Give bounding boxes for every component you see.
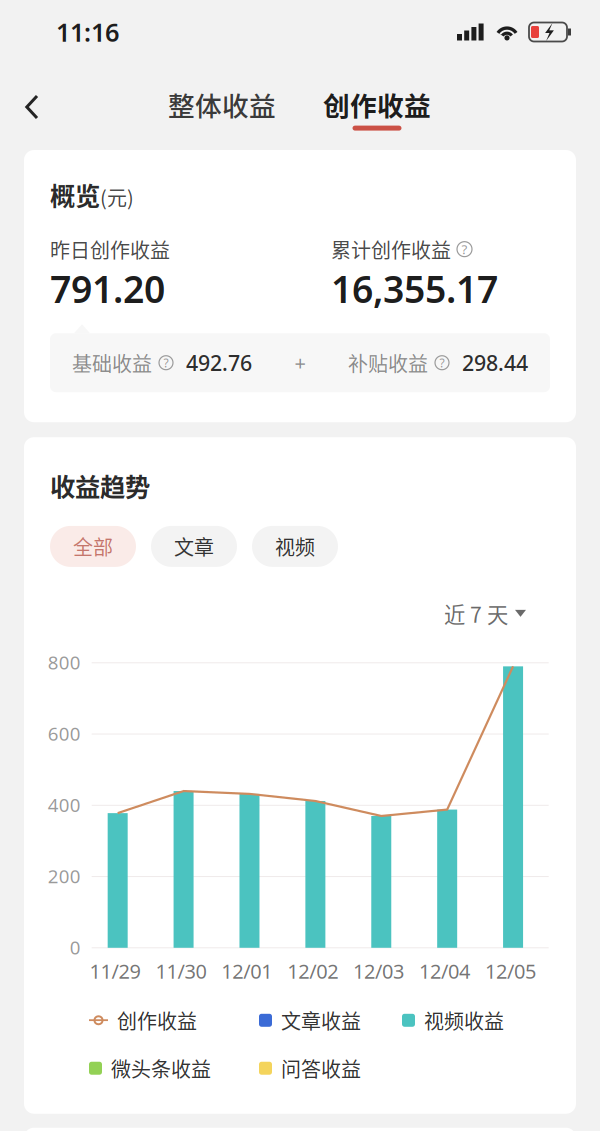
staticText: 400 bbox=[48, 792, 81, 817]
staticText: 298.44 bbox=[462, 349, 528, 377]
button[interactable]: 视频 bbox=[252, 526, 338, 567]
staticText: 12/02 bbox=[287, 958, 338, 984]
staticText: (元) bbox=[100, 182, 134, 211]
button[interactable]: Back bbox=[6, 81, 58, 133]
staticText: ? bbox=[163, 355, 168, 371]
staticText: 文章收益 bbox=[281, 1006, 361, 1035]
staticText: 概览 bbox=[50, 176, 100, 213]
staticText: 600 bbox=[48, 721, 81, 746]
staticText: ? bbox=[461, 240, 467, 258]
staticText: 昨日创作收益 bbox=[50, 235, 170, 264]
staticText: 12/05 bbox=[485, 958, 536, 984]
staticText: 11:16 bbox=[56, 15, 119, 49]
staticText: 微头条收益 bbox=[111, 1054, 211, 1083]
staticText: 创作收益 bbox=[323, 85, 431, 124]
staticText: ? bbox=[439, 355, 444, 371]
button[interactable]: 全部 bbox=[50, 526, 136, 567]
staticText: 791.20 bbox=[50, 264, 165, 313]
button[interactable]: 近 7 天 bbox=[444, 598, 550, 629]
staticText: 全部 bbox=[73, 532, 113, 561]
staticText: 0 bbox=[70, 935, 81, 960]
staticText: 12/01 bbox=[221, 958, 272, 984]
staticText: 问答收益 bbox=[281, 1054, 361, 1083]
staticText: 创作收益 bbox=[117, 1006, 197, 1035]
staticText: 800 bbox=[48, 650, 81, 675]
staticText: 收益趋势 bbox=[50, 467, 150, 504]
staticText: 492.76 bbox=[186, 349, 252, 377]
staticText: 16,355.17 bbox=[331, 264, 498, 313]
staticText: 文章 bbox=[174, 532, 214, 561]
staticText: 整体收益 bbox=[168, 85, 276, 124]
staticText: 近 7 天 bbox=[444, 598, 508, 629]
staticText: 12/04 bbox=[419, 958, 470, 984]
staticText: 基础收益 bbox=[72, 348, 152, 377]
staticText: 200 bbox=[48, 863, 81, 888]
staticText: 累计创作收益 bbox=[331, 235, 451, 264]
button[interactable]: 整体收益 bbox=[167, 85, 277, 131]
button[interactable]: 创作收益 bbox=[322, 85, 432, 131]
staticText: 视频收益 bbox=[424, 1006, 504, 1035]
staticText: 11/30 bbox=[155, 958, 206, 984]
staticText: 11/29 bbox=[89, 958, 140, 984]
staticText: + bbox=[294, 349, 305, 376]
button[interactable]: 文章 bbox=[151, 526, 237, 567]
staticText: 视频 bbox=[275, 532, 315, 561]
staticText: 补贴收益 bbox=[348, 348, 428, 377]
staticText: 12/03 bbox=[353, 958, 404, 984]
